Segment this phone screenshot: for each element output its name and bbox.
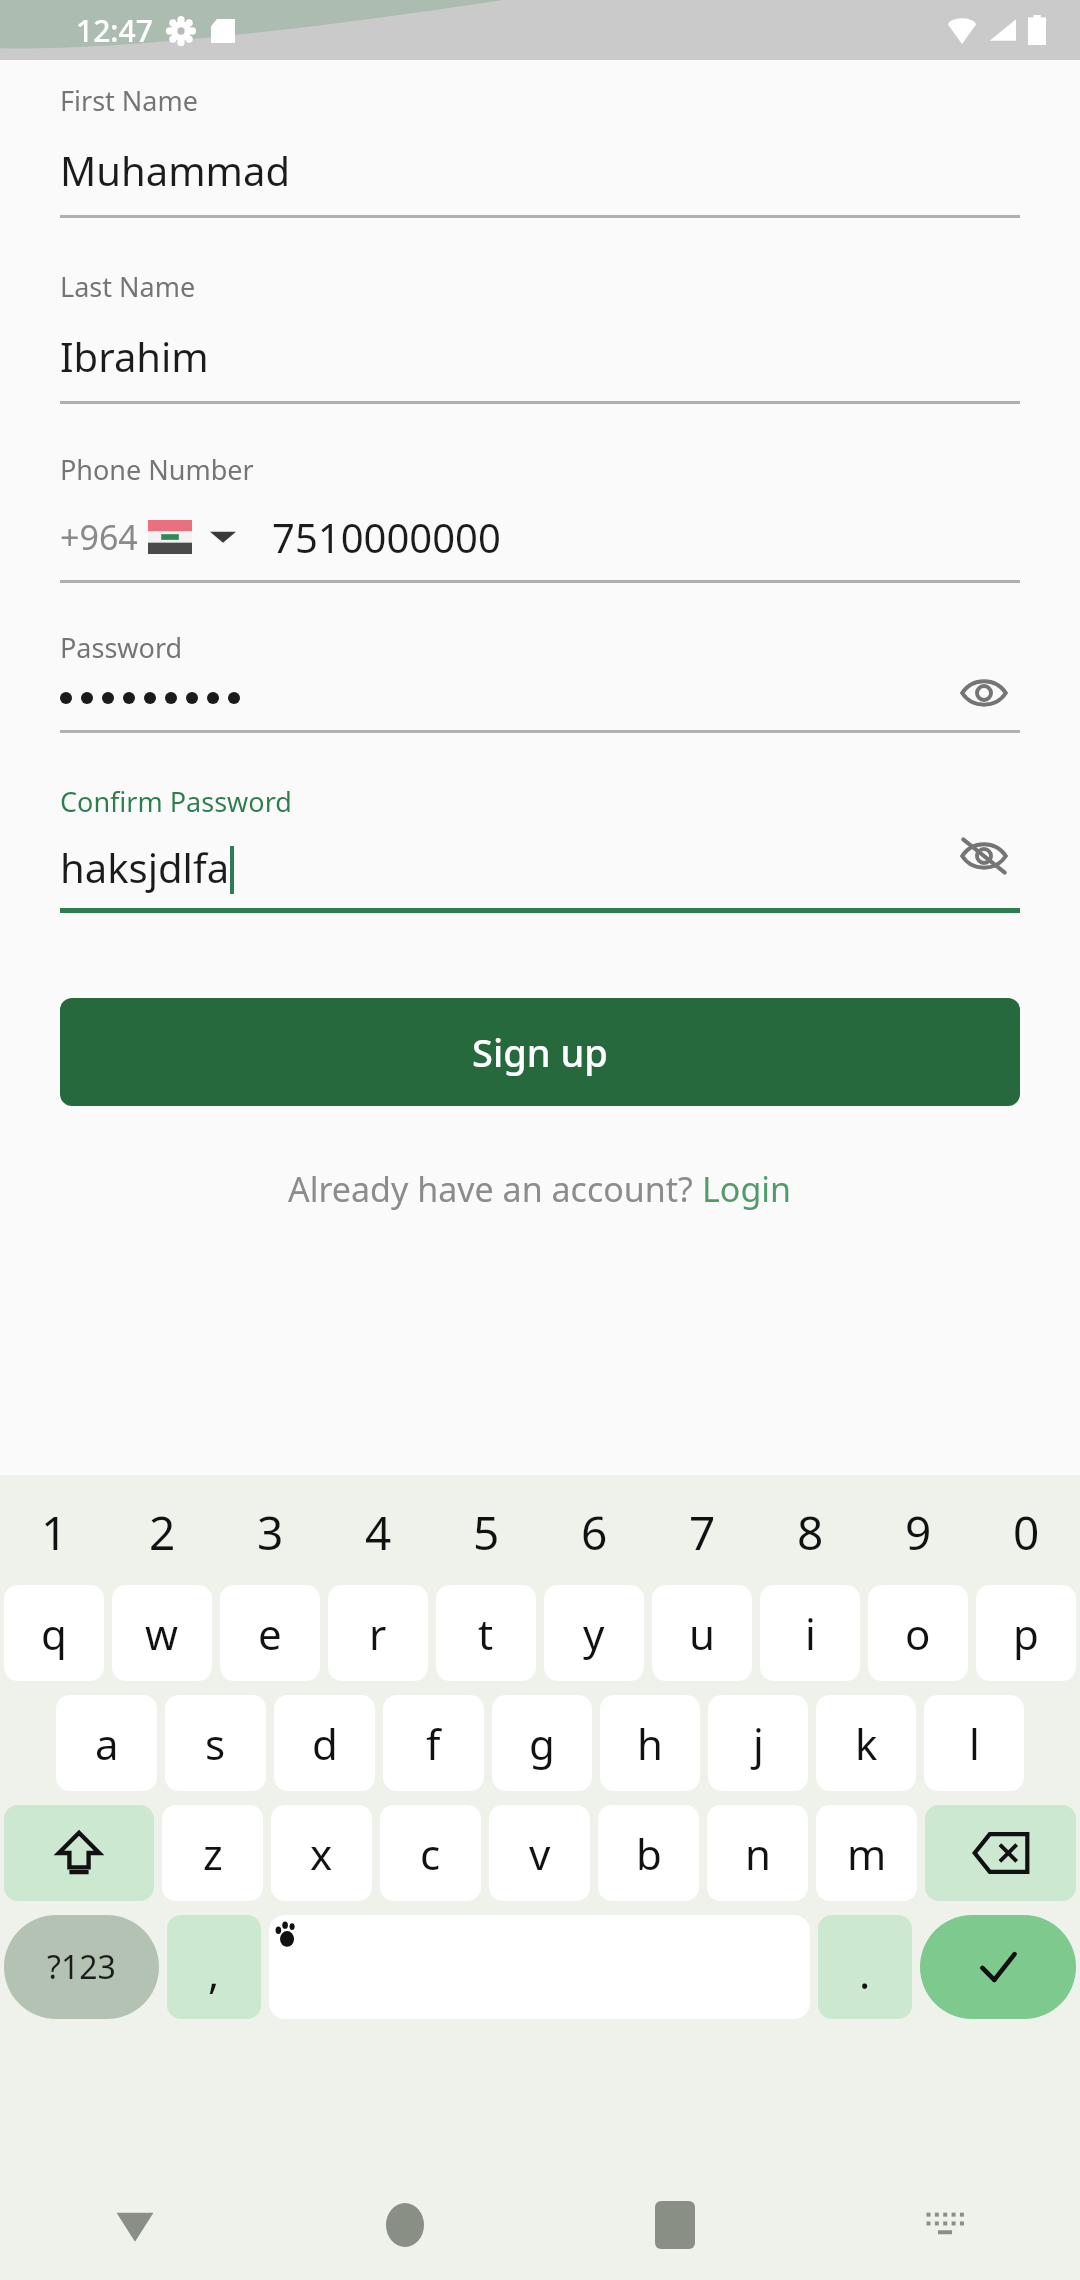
staticText: w — [145, 1605, 179, 1662]
button[interactable]: q — [4, 1585, 104, 1681]
button[interactable]: 5 — [432, 1489, 540, 1575]
staticText: 0 — [1013, 1501, 1040, 1564]
button[interactable]: Show password — [948, 657, 1020, 729]
button[interactable]: Confirm Password — [60, 783, 1020, 913]
button[interactable]: h — [600, 1695, 700, 1791]
button[interactable]: Hide password — [948, 820, 1020, 892]
button[interactable]: Enter — [920, 1915, 1076, 2019]
button[interactable]: o — [868, 1585, 968, 1681]
button[interactable]: m — [816, 1805, 917, 1901]
button[interactable]: j — [708, 1695, 808, 1791]
staticText: o — [905, 1605, 931, 1662]
staticText: e — [258, 1605, 282, 1662]
button[interactable]: 2 — [108, 1489, 216, 1575]
staticText: s — [205, 1715, 226, 1772]
staticText: ?123 — [47, 1945, 116, 1989]
button[interactable]: Home — [270, 2170, 540, 2280]
button[interactable]: Sign up — [60, 998, 1020, 1106]
staticText: h — [637, 1715, 663, 1772]
staticText: q — [41, 1605, 67, 1662]
staticText: First Name — [60, 82, 198, 119]
staticText: k — [855, 1715, 878, 1772]
staticText: Ibrahim — [60, 329, 209, 383]
button[interactable]: x — [271, 1805, 372, 1901]
button[interactable]: Shift — [4, 1805, 154, 1901]
staticText: y — [583, 1605, 605, 1662]
button[interactable]: 4 — [324, 1489, 432, 1575]
staticText: , — [208, 1944, 220, 2001]
button[interactable]: Backspace — [925, 1805, 1076, 1901]
button[interactable]: c — [380, 1805, 481, 1901]
button[interactable]: Password — [60, 629, 1020, 733]
button[interactable]: 3 — [216, 1489, 324, 1575]
staticText: v — [529, 1825, 551, 1882]
button[interactable]: 0 — [972, 1489, 1080, 1575]
staticText: 7510000000 — [272, 510, 501, 564]
button[interactable]: Space — [269, 1915, 810, 2019]
staticText: Phone Number — [60, 451, 254, 488]
button[interactable]: p — [976, 1585, 1076, 1681]
staticText: x — [310, 1825, 333, 1882]
staticText: n — [745, 1825, 771, 1882]
staticText: +964 — [60, 514, 138, 560]
button[interactable]: n — [707, 1805, 808, 1901]
staticText: 1 — [41, 1501, 68, 1564]
button[interactable]: 8 — [756, 1489, 864, 1575]
button[interactable]: Hide keyboard — [0, 2170, 270, 2280]
button[interactable]: Recents — [540, 2170, 810, 2280]
button[interactable]: z — [162, 1805, 263, 1901]
button[interactable]: l — [924, 1695, 1024, 1791]
staticText: j — [753, 1715, 764, 1772]
other: Select country code — [210, 524, 236, 550]
button[interactable]: . — [818, 1915, 912, 2019]
staticText: Login — [702, 1166, 792, 1212]
staticText: Already have an account? — [288, 1166, 702, 1212]
staticText: l — [969, 1715, 980, 1772]
button[interactable]: , — [167, 1915, 261, 2019]
staticText: Last Name — [60, 268, 196, 305]
button[interactable]: b — [598, 1805, 699, 1901]
button[interactable]: i — [760, 1585, 860, 1681]
button[interactable]: s — [165, 1695, 266, 1791]
staticText: . — [859, 1944, 871, 2001]
staticText: d — [312, 1715, 338, 1772]
staticText: 2 — [149, 1501, 176, 1564]
staticText: Sign up — [472, 1026, 608, 1078]
staticText: z — [203, 1825, 223, 1882]
button[interactable]: k — [816, 1695, 916, 1791]
staticText: g — [529, 1715, 555, 1772]
button[interactable]: w — [112, 1585, 212, 1681]
button[interactable]: 9 — [864, 1489, 972, 1575]
button[interactable]: Switch keyboard — [810, 2170, 1080, 2280]
staticText: Confirm Password — [60, 783, 292, 820]
button[interactable]: ?123 — [4, 1915, 159, 2019]
button[interactable]: Last Name — [60, 268, 1020, 404]
staticText: 9 — [905, 1501, 932, 1564]
staticText: Password — [60, 629, 183, 666]
button[interactable]: v — [489, 1805, 590, 1901]
button[interactable]: g — [492, 1695, 592, 1791]
button[interactable]: 1 — [0, 1489, 108, 1575]
button[interactable]: t — [436, 1585, 536, 1681]
button[interactable]: a — [56, 1695, 157, 1791]
button[interactable]: 6 — [540, 1489, 648, 1575]
staticText: haksjdlfa — [60, 840, 230, 894]
button[interactable]: d — [274, 1695, 375, 1791]
button[interactable]: u — [652, 1585, 752, 1681]
staticText: 8 — [797, 1501, 824, 1564]
button[interactable]: First Name — [60, 82, 1020, 218]
staticText: r — [369, 1605, 387, 1662]
staticText: f — [426, 1715, 441, 1772]
button[interactable]: e — [220, 1585, 320, 1681]
button[interactable]: r — [328, 1585, 428, 1681]
button[interactable]: Phone Number — [60, 451, 1020, 583]
staticText: a — [95, 1715, 119, 1772]
button[interactable]: Login — [702, 1166, 792, 1212]
staticText: 7 — [689, 1501, 716, 1564]
staticText: p — [1013, 1605, 1039, 1662]
button[interactable]: 7 — [648, 1489, 756, 1575]
button[interactable]: y — [544, 1585, 644, 1681]
staticText: 3 — [257, 1501, 284, 1564]
button[interactable]: f — [383, 1695, 484, 1791]
staticText: 5 — [473, 1501, 500, 1564]
